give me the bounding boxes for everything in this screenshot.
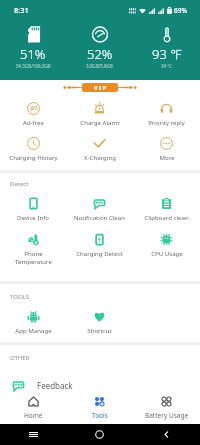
button[interactable]: App Manage <box>0 303 66 334</box>
button[interactable]: More <box>133 130 200 161</box>
button[interactable]: CPU Usage <box>133 226 200 257</box>
button[interactable]: Home <box>0 394 66 420</box>
button[interactable]: Charge Alarm <box>66 95 133 126</box>
button[interactable]: Charging History <box>0 130 66 161</box>
staticText: 52% <box>87 45 113 63</box>
staticText: TOOLS <box>10 293 30 301</box>
staticText: Clipboard clean <box>144 213 189 221</box>
staticText: App Manage <box>15 326 52 334</box>
button[interactable]: Notification Clean <box>66 190 133 221</box>
staticText: 3.0GB/5.8GB <box>86 63 113 69</box>
button[interactable]: 51% <box>0 26 66 69</box>
staticText: Tools <box>92 411 108 420</box>
staticText: Charging History <box>9 153 58 161</box>
button[interactable]: Home <box>66 430 133 439</box>
staticText: 54.3GB/106.3GB <box>16 63 51 69</box>
staticText: Feedback <box>37 380 73 391</box>
staticText: Charging Detect <box>76 249 123 257</box>
staticText: X-Charging <box>84 153 116 161</box>
staticText: OTHER <box>10 354 30 362</box>
button[interactable]: X-Charging <box>66 130 133 161</box>
button[interactable]: Clipboard clean <box>133 190 200 221</box>
button[interactable]: Battery Usage <box>133 394 200 420</box>
staticText: 93 ℉ <box>152 45 182 63</box>
staticText: Notification Clean <box>74 213 125 221</box>
button[interactable]: Feedback <box>0 376 200 394</box>
staticText: More <box>159 153 175 161</box>
button[interactable]: Recents <box>0 430 66 439</box>
button[interactable]: Phone Temperature <box>0 226 66 265</box>
staticText: 34 ℃ <box>161 63 172 69</box>
staticText: V I P <box>94 84 106 91</box>
button[interactable]: Device Info <box>0 190 66 221</box>
staticText: 69% <box>174 6 187 15</box>
button[interactable]: Ad-free <box>0 95 66 126</box>
staticText: Battery Usage <box>145 411 189 420</box>
button[interactable]: 52% <box>66 26 133 69</box>
staticText: Priority reply <box>148 118 185 126</box>
staticText: CPU Usage <box>151 249 183 257</box>
staticText: Home <box>24 411 43 420</box>
staticText: Ad-free <box>23 118 44 126</box>
button[interactable]: Shortcut <box>66 303 133 334</box>
staticText: Detect <box>10 180 29 188</box>
staticText: 8:31 <box>14 5 29 15</box>
staticText: Charge Alarm <box>80 118 120 126</box>
button[interactable]: Tools <box>66 394 133 420</box>
staticText: Phone Temperature <box>15 249 52 265</box>
button[interactable]: 93 ℉ <box>133 26 200 69</box>
staticText: 51% <box>20 45 46 63</box>
button[interactable]: Back <box>133 430 200 439</box>
button[interactable]: Charging Detect <box>66 226 133 257</box>
staticText: Shortcut <box>87 326 112 334</box>
button[interactable]: Priority reply <box>133 95 200 126</box>
staticText: Device Info <box>17 213 49 221</box>
